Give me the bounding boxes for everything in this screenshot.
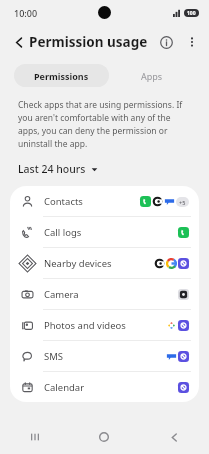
button[interactable]: Home — [69, 420, 139, 454]
staticText: Call logs — [44, 226, 82, 239]
staticText: Permissions — [34, 70, 89, 82]
button[interactable]: Back — [6, 29, 32, 55]
button[interactable]: Information — [153, 29, 179, 55]
staticText: Camera — [44, 288, 79, 301]
button[interactable]: Apps — [109, 64, 194, 87]
staticText: Permission usage — [29, 33, 148, 51]
button[interactable]: Camera — [10, 279, 199, 309]
button[interactable]: Permissions — [14, 64, 109, 87]
staticText: 10:00 — [14, 7, 38, 19]
staticText: Nearby devices — [44, 257, 112, 270]
button[interactable]: Calendar — [10, 372, 199, 402]
button[interactable]: Back — [139, 420, 209, 454]
staticText: SMS — [44, 350, 64, 363]
staticText: Apps — [141, 70, 163, 82]
button[interactable]: Call logs — [10, 217, 199, 247]
staticText: Contacts — [44, 195, 83, 208]
button[interactable]: SMS — [10, 341, 199, 371]
staticText: Check apps that are using permissions. I… — [18, 99, 191, 150]
staticText: Last 24 hours — [18, 162, 86, 176]
staticText: Calendar — [44, 381, 85, 394]
staticText: 100 — [187, 10, 196, 17]
button[interactable]: Last 24 hours — [18, 160, 102, 178]
button[interactable]: More options — [179, 29, 205, 55]
staticText: Photos and videos — [44, 319, 126, 332]
button[interactable]: Recents — [0, 420, 69, 454]
button[interactable]: Contacts — [10, 186, 199, 216]
button[interactable]: Nearby devices — [10, 248, 199, 278]
button[interactable]: Photos and videos — [10, 310, 199, 340]
staticText: +5 — [179, 199, 186, 206]
